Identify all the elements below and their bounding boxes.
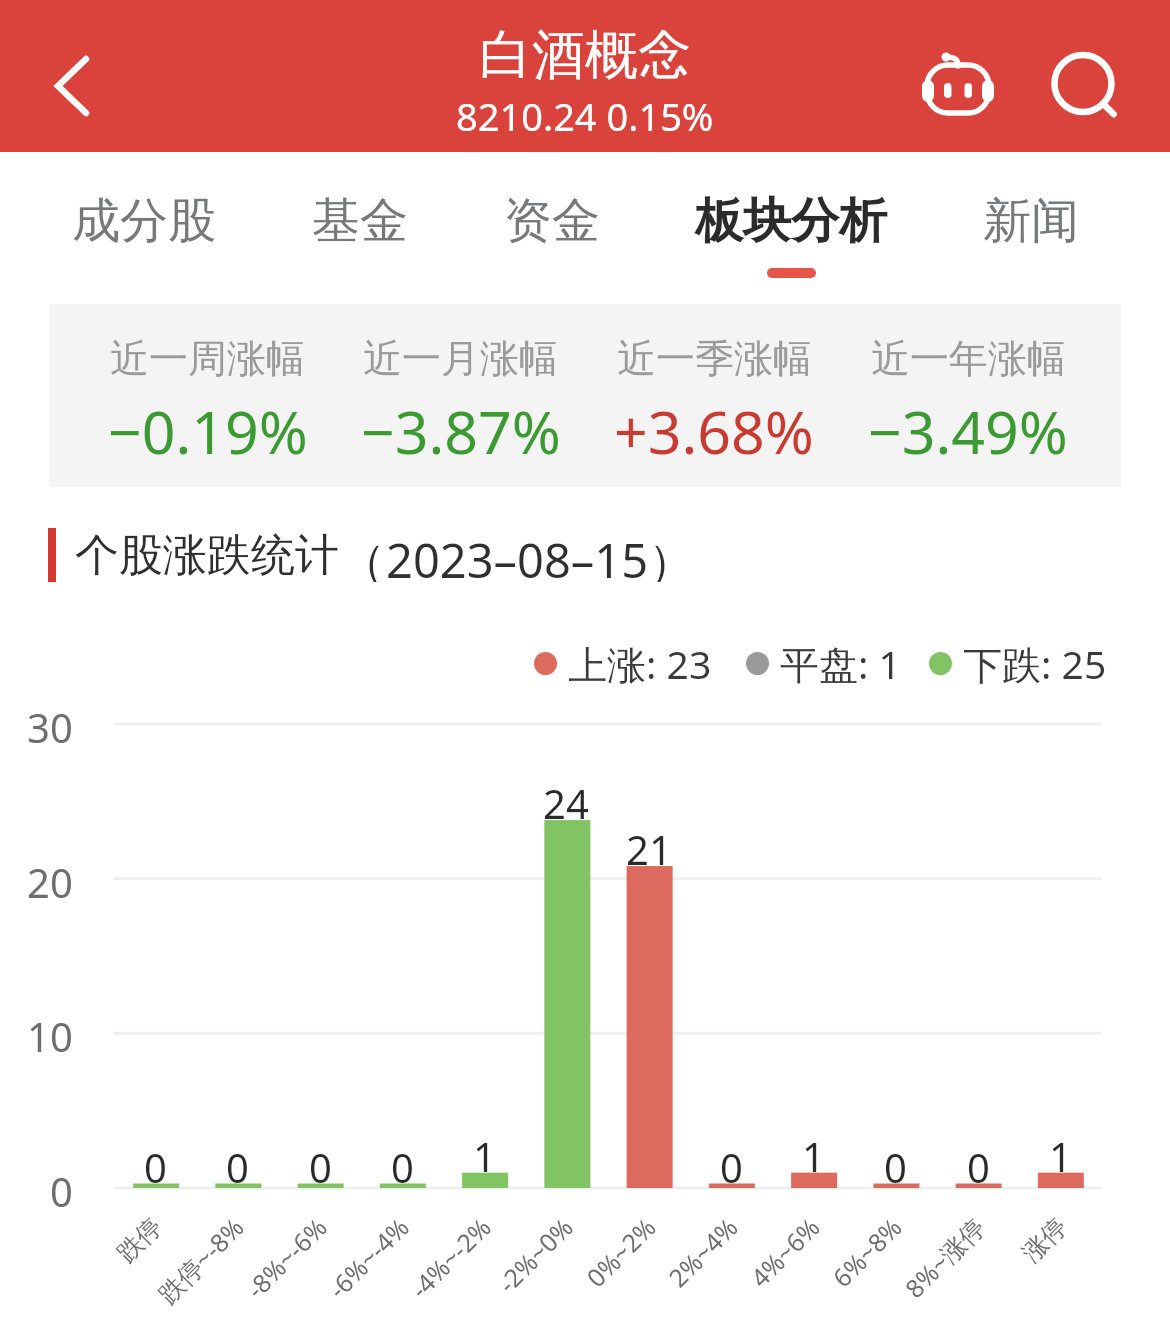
staticText: 涨停 (1016, 1211, 1073, 1268)
staticText: 近一年涨幅 (871, 334, 1066, 383)
staticText: 0 (144, 1140, 167, 1194)
button[interactable]: Search (1029, 13, 1141, 125)
staticText: +3.68% (614, 391, 814, 471)
staticText: 近一周涨幅 (110, 334, 305, 383)
staticText: 0 (391, 1140, 414, 1194)
staticText: 0 (50, 1164, 73, 1218)
staticText: 平盘: 1 (780, 637, 901, 690)
staticText: 30 (27, 700, 73, 754)
staticText: 1 (1049, 1129, 1072, 1183)
staticText: 0 (720, 1140, 743, 1194)
staticText: 近一季涨幅 (617, 334, 812, 383)
staticText: 近一月涨幅 (363, 334, 558, 383)
staticText: 跌停~-8% (150, 1210, 251, 1310)
staticText: 上涨: 23 (568, 637, 712, 690)
staticText: 20 (27, 855, 73, 909)
staticText: 8%~涨停 (897, 1210, 992, 1305)
button[interactable]: Back (0, 20, 112, 132)
staticText: -6%~-4% (320, 1210, 416, 1305)
staticText: 0 (967, 1140, 990, 1194)
staticText: 资金 (504, 191, 600, 251)
staticText: 白酒概念 (479, 22, 691, 89)
button[interactable]: 成分股 (44, 152, 244, 304)
staticText: −3.87% (361, 391, 561, 471)
staticText: 10 (27, 1009, 73, 1063)
button[interactable]: 平盘: 1 (746, 637, 901, 690)
staticText: 0%~2% (579, 1210, 663, 1294)
staticText: 1 (802, 1129, 825, 1183)
staticText: （2023–08–15） (339, 528, 696, 582)
staticText: -8%~-6% (238, 1210, 334, 1305)
button[interactable]: 近一年涨幅 (841, 334, 1095, 471)
staticText: 下跌: 25 (963, 637, 1107, 690)
button[interactable]: 近一周涨幅 (81, 334, 334, 471)
staticText: 4%~6% (743, 1210, 827, 1294)
staticText: 1 (473, 1129, 496, 1183)
staticText: 24 (543, 776, 589, 830)
button[interactable]: 上涨: 23 (534, 637, 712, 690)
staticText: 成分股 (72, 191, 216, 251)
button[interactable]: 新闻 (951, 152, 1111, 304)
staticText: 新闻 (983, 191, 1079, 251)
staticText: -2%~0% (490, 1210, 580, 1300)
button[interactable]: AI assistant (902, 13, 1014, 125)
staticText: 板块分析 (695, 191, 887, 251)
staticText: 跌停 (111, 1211, 168, 1268)
staticText: −3.49% (868, 391, 1068, 471)
button[interactable]: 近一季涨幅 (587, 334, 841, 471)
staticText: 21 (626, 822, 672, 876)
staticText: 0 (309, 1140, 332, 1194)
staticText: −0.19% (108, 391, 308, 471)
button[interactable]: 下跌: 25 (929, 637, 1107, 690)
staticText: 6%~8% (825, 1210, 909, 1294)
staticText: -4%~-2% (402, 1210, 498, 1305)
staticText: 2%~4% (661, 1210, 745, 1294)
staticText: 0 (884, 1140, 907, 1194)
staticText: 0 (226, 1140, 249, 1194)
button[interactable]: 板块分析 (666, 152, 916, 304)
staticText: 8210.24 0.15% (456, 90, 714, 142)
button[interactable]: 基金 (280, 152, 440, 304)
button[interactable]: 近一月涨幅 (334, 334, 587, 471)
staticText: 基金 (312, 191, 408, 251)
staticText: 个股涨跌统计 (75, 528, 339, 582)
button[interactable]: 资金 (472, 152, 632, 304)
